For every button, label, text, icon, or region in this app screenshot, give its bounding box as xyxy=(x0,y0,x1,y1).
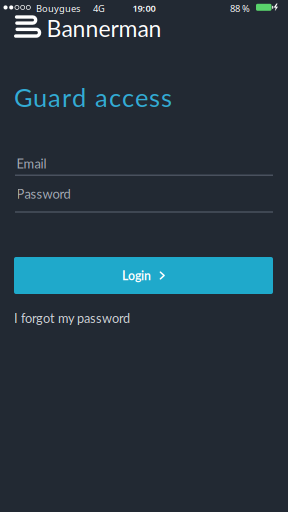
button[interactable]: Password xyxy=(15,182,273,214)
staticText: 19:00 xyxy=(132,2,155,14)
button[interactable]: Email xyxy=(15,152,273,177)
staticText: Email xyxy=(16,156,46,171)
staticText: 88 % xyxy=(230,2,250,15)
staticText: Bannerman xyxy=(46,14,161,42)
staticText: Password xyxy=(16,186,70,201)
button[interactable]: Login xyxy=(14,257,273,294)
staticText: 4G xyxy=(93,2,105,15)
staticText: Bouygues xyxy=(36,2,80,15)
button[interactable]: I forgot my password xyxy=(14,310,130,326)
staticText: Login xyxy=(122,268,151,283)
staticText: I forgot my password xyxy=(14,310,130,326)
staticText: Guard access xyxy=(14,82,172,112)
